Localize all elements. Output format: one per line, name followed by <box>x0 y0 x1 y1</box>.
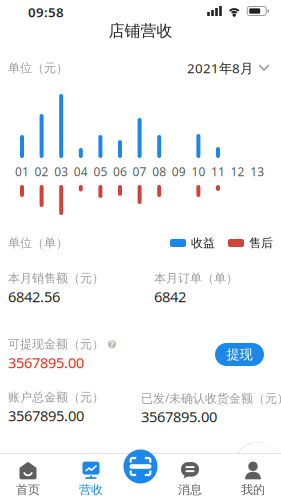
staticText: 03 <box>54 163 68 179</box>
staticText: 2021年8月 <box>187 59 253 77</box>
staticText: 单位（单） <box>8 236 68 250</box>
button[interactable]: 营收 <box>56 459 126 499</box>
staticText: 11 <box>211 163 225 179</box>
staticText: 已发/未确认收货金额（元） <box>141 390 281 406</box>
staticText: 6842.56 <box>8 287 60 306</box>
staticText: 本月订单（单） <box>154 271 238 286</box>
staticText: 3567895.00 <box>8 406 84 425</box>
staticText: 账户总金额（元） <box>8 390 104 405</box>
staticText: 3567895.00 <box>141 407 217 426</box>
staticText: ? <box>110 339 114 350</box>
button[interactable]: 2021年8月 <box>187 59 269 77</box>
staticText: 营收 <box>79 482 103 497</box>
staticText: 06 <box>113 163 127 179</box>
staticText: 05 <box>93 163 107 179</box>
staticText: 首页 <box>16 482 40 497</box>
staticText: 07 <box>133 163 147 179</box>
staticText: 收益 <box>191 236 215 250</box>
button[interactable]: 消息 <box>155 459 225 499</box>
staticText: 提现 <box>226 346 252 363</box>
staticText: 09 <box>172 163 186 179</box>
staticText: 单位（元） <box>8 61 68 75</box>
staticText: 6842 <box>154 287 186 306</box>
staticText: 09:58 <box>28 3 64 21</box>
staticText: 可提现金额（元） <box>8 337 104 352</box>
staticText: 消息 <box>178 482 202 497</box>
staticText: 本月销售额（元） <box>8 271 104 286</box>
button[interactable]: 扫一扫 <box>123 449 157 483</box>
staticText: 10 <box>191 163 205 179</box>
staticText: 01 <box>15 163 29 179</box>
button[interactable]: 首页 <box>0 459 56 499</box>
button[interactable]: 我的 <box>225 459 281 499</box>
staticText: 04 <box>74 163 88 179</box>
staticText: 3567895.00 <box>8 353 84 372</box>
staticText: 13 <box>250 163 264 179</box>
staticText: 我的 <box>241 482 265 497</box>
staticText: 12 <box>231 163 245 179</box>
button[interactable]: 提现 <box>215 343 264 366</box>
staticText: 08 <box>152 163 166 179</box>
staticText: 售后 <box>249 236 273 250</box>
staticText: 02 <box>35 163 49 179</box>
staticText: 店铺营收 <box>108 21 172 41</box>
